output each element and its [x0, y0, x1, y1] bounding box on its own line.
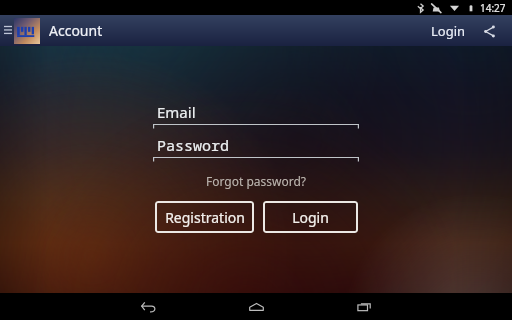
button[interactable]: Back: [118, 293, 178, 320]
button[interactable]: Login: [425, 16, 472, 46]
button[interactable]: Password: [153, 135, 359, 162]
staticText: Password: [157, 135, 230, 155]
staticText: Forgot password?: [206, 173, 307, 189]
staticText: Login: [292, 208, 329, 227]
button[interactable]: Forgot password?: [202, 171, 311, 191]
button[interactable]: App icon: [14, 18, 40, 44]
button[interactable]: Recent apps: [334, 293, 394, 320]
staticText: Registration: [165, 208, 245, 227]
staticText: Account: [49, 21, 103, 40]
button[interactable]: Login: [263, 201, 358, 233]
staticText: Login: [431, 22, 466, 40]
button[interactable]: Share: [476, 18, 502, 44]
button[interactable]: Navigation drawer: [2, 15, 14, 46]
button[interactable]: Registration: [155, 201, 254, 233]
staticText: 14:27: [480, 1, 506, 15]
button[interactable]: Email: [153, 102, 359, 129]
staticText: Email: [157, 102, 196, 122]
button[interactable]: Home: [226, 293, 286, 320]
